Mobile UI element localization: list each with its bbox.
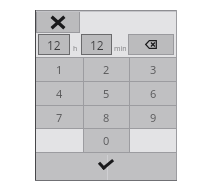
staticText: 5 [103, 86, 110, 101]
staticText: 4 [56, 86, 63, 101]
staticText: 1 [56, 62, 63, 77]
staticText: 12 [47, 37, 61, 53]
button[interactable]: 2 [84, 58, 129, 81]
staticText: 7 [56, 110, 63, 125]
staticText: 0 [103, 133, 110, 148]
button[interactable]: 0 [84, 129, 129, 152]
button[interactable]: Confirm [36, 153, 176, 180]
button[interactable]: 7 [36, 106, 83, 129]
staticText: 8 [103, 110, 110, 125]
button[interactable]: 3 [130, 58, 176, 81]
button[interactable]: 12 [81, 34, 112, 55]
button[interactable]: 1 [36, 58, 83, 81]
staticText: 9 [150, 110, 157, 125]
button[interactable]: 6 [130, 82, 176, 105]
staticText: 12 [90, 37, 104, 53]
staticText: 2 [103, 62, 110, 77]
button[interactable]: 9 [130, 106, 176, 129]
button[interactable]: 4 [36, 82, 83, 105]
staticText: 6 [150, 86, 157, 101]
button[interactable]: 12 [38, 34, 70, 55]
staticText: h [73, 44, 78, 54]
button[interactable]: Close [36, 11, 80, 33]
button[interactable]: Backspace [128, 34, 174, 55]
staticText: 3 [150, 62, 157, 77]
button[interactable]: 5 [84, 82, 129, 105]
staticText: min [114, 44, 127, 54]
button[interactable]: 8 [84, 106, 129, 129]
